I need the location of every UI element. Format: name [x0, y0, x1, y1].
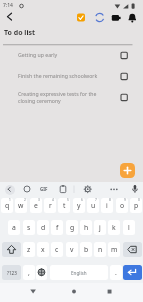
- button[interactable]: ?123: [2, 265, 21, 280]
- staticText: p: [134, 201, 139, 210]
- button[interactable]: [94, 12, 105, 23]
- button[interactable]: [0, 69, 143, 84]
- staticText: ,: [28, 268, 30, 277]
- button[interactable]: a: [8, 220, 20, 235]
- button[interactable]: h: [80, 220, 92, 235]
- staticText: h: [84, 223, 89, 232]
- staticText: s: [27, 223, 31, 232]
- button[interactable]: [5, 185, 15, 195]
- staticText: 7:14: [3, 2, 13, 9]
- button[interactable]: n: [94, 242, 106, 257]
- staticText: y: [77, 201, 81, 210]
- button[interactable]: j: [94, 220, 106, 235]
- staticText: u: [91, 201, 96, 210]
- button[interactable]: [120, 163, 135, 178]
- button[interactable]: [0, 48, 143, 63]
- button[interactable]: [2, 242, 21, 257]
- staticText: e: [34, 201, 38, 210]
- staticText: t: [63, 201, 66, 210]
- button[interactable]: [67, 285, 81, 299]
- button[interactable]: f: [51, 220, 63, 235]
- button[interactable]: [58, 184, 68, 194]
- staticText: l: [128, 223, 130, 232]
- button[interactable]: [123, 265, 142, 280]
- button[interactable]: [22, 184, 32, 194]
- button[interactable]: [36, 265, 47, 280]
- button[interactable]: o: [116, 198, 128, 213]
- button[interactable]: [103, 285, 117, 299]
- button[interactable]: m: [108, 242, 120, 257]
- staticText: Getting up early: [18, 51, 58, 58]
- staticText: o: [120, 201, 125, 210]
- button[interactable]: p: [130, 198, 142, 213]
- button[interactable]: d: [37, 220, 49, 235]
- button[interactable]: s: [23, 220, 35, 235]
- button[interactable]: [123, 242, 142, 257]
- button[interactable]: t: [58, 198, 70, 213]
- button[interactable]: u: [87, 198, 99, 213]
- staticText: n: [98, 245, 103, 254]
- staticText: 0: [138, 198, 140, 202]
- button[interactable]: x: [37, 242, 49, 257]
- staticText: g: [70, 223, 75, 232]
- button[interactable]: [127, 12, 138, 23]
- button[interactable]: [26, 285, 40, 299]
- button[interactable]: [130, 184, 140, 194]
- button[interactable]: .: [110, 265, 122, 280]
- button[interactable]: b: [80, 242, 92, 257]
- button[interactable]: GIF: [40, 186, 48, 192]
- staticText: v: [70, 245, 74, 254]
- staticText: 6: [81, 198, 83, 202]
- staticText: Finish the remaining schoolwork: [18, 72, 98, 79]
- button[interactable]: w: [15, 198, 27, 213]
- staticText: 9: [124, 198, 126, 202]
- staticText: 2: [24, 198, 26, 202]
- staticText: r: [49, 201, 52, 210]
- staticText: English: [71, 270, 87, 276]
- staticText: q: [5, 201, 10, 210]
- button[interactable]: ,: [23, 265, 35, 280]
- button[interactable]: g: [66, 220, 78, 235]
- staticText: Creating expressive tests for the closin…: [18, 90, 97, 105]
- staticText: 1: [9, 198, 11, 202]
- staticText: z: [27, 245, 31, 254]
- button[interactable]: [75, 12, 86, 23]
- button[interactable]: v: [66, 242, 78, 257]
- staticText: b: [84, 245, 89, 254]
- staticText: .: [115, 268, 117, 277]
- button[interactable]: l: [123, 220, 135, 235]
- button[interactable]: z: [23, 242, 35, 257]
- staticText: a: [12, 223, 16, 232]
- button[interactable]: q: [1, 198, 13, 213]
- staticText: k: [112, 223, 116, 232]
- staticText: m: [111, 245, 118, 254]
- staticText: 8: [109, 198, 111, 202]
- staticText: ?123: [7, 270, 17, 276]
- staticText: d: [41, 223, 46, 232]
- button[interactable]: [109, 184, 119, 194]
- staticText: GIF: [40, 186, 48, 192]
- staticText: w: [18, 201, 24, 210]
- staticText: j: [99, 223, 101, 232]
- button[interactable]: r: [44, 198, 56, 213]
- button[interactable]: k: [108, 220, 120, 235]
- staticText: 4: [52, 198, 54, 202]
- staticText: f: [56, 223, 59, 232]
- staticText: 5: [67, 198, 69, 202]
- staticText: x: [41, 245, 45, 254]
- staticText: 7: [95, 198, 97, 202]
- button[interactable]: c: [51, 242, 63, 257]
- button[interactable]: [83, 184, 93, 194]
- button[interactable]: i: [101, 198, 113, 213]
- staticText: c: [55, 245, 59, 254]
- staticText: To do list: [4, 28, 36, 38]
- button[interactable]: English: [50, 265, 108, 280]
- button[interactable]: [4, 11, 16, 23]
- button[interactable]: y: [73, 198, 85, 213]
- staticText: 3: [38, 198, 40, 202]
- button[interactable]: [110, 12, 121, 23]
- staticText: i: [106, 201, 108, 210]
- button[interactable]: [0, 88, 143, 110]
- button[interactable]: e: [30, 198, 42, 213]
